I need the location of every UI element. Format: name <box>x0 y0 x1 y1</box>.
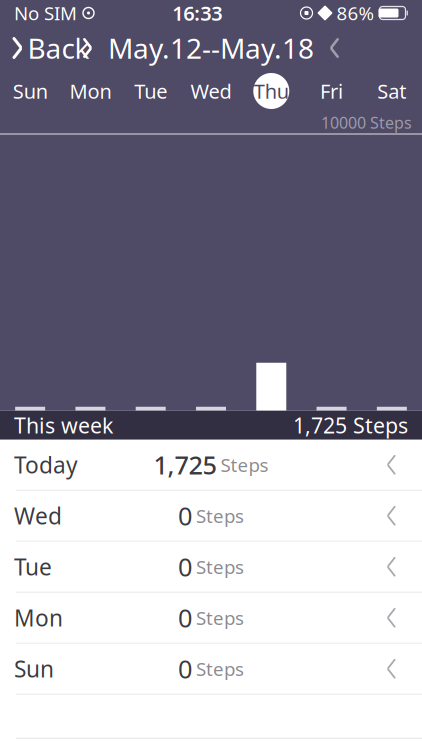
staticText: This week <box>14 411 113 439</box>
staticText: 16:33 <box>172 0 222 26</box>
button[interactable]: Fri <box>301 71 362 111</box>
button[interactable]: Sun <box>0 71 60 111</box>
staticText: 10000 Steps <box>321 112 412 133</box>
staticText: 0 <box>178 550 192 583</box>
staticText: Mon <box>69 78 111 104</box>
button[interactable]: Previous week <box>77 32 98 64</box>
staticText: 1,725 <box>153 448 216 481</box>
button[interactable]: Mon <box>60 71 121 111</box>
staticText: Sat <box>377 78 406 104</box>
staticText: Tue <box>134 78 167 104</box>
staticText: 0 <box>178 652 192 685</box>
button[interactable]: Tue <box>0 542 422 593</box>
staticText: Sun <box>13 78 48 104</box>
button[interactable]: Mon <box>0 593 422 644</box>
button[interactable]: Sat <box>362 71 422 111</box>
staticText: Fri <box>320 78 343 104</box>
staticText: Mon <box>14 603 63 633</box>
staticText: Steps <box>196 503 244 528</box>
staticText: 0 <box>178 601 192 634</box>
staticText: Thu <box>254 78 289 104</box>
button[interactable]: Today <box>0 440 422 491</box>
staticText: Steps <box>220 452 268 477</box>
staticText: Wed <box>190 78 231 104</box>
staticText: Wed <box>14 501 62 531</box>
staticText: Tue <box>14 552 52 582</box>
staticText: Sun <box>14 654 54 684</box>
staticText: May.12--May.18 <box>108 29 314 67</box>
staticText: 0 <box>178 499 192 532</box>
button[interactable]: Back <box>0 23 89 73</box>
staticText: Today <box>14 450 78 480</box>
staticText: Back <box>27 29 89 67</box>
button[interactable]: Next week <box>324 32 345 64</box>
button[interactable]: Tue <box>121 71 181 111</box>
staticText: Steps <box>196 656 244 681</box>
button[interactable]: Thu <box>241 71 301 111</box>
staticText: Steps <box>196 554 244 579</box>
staticText: 86% <box>336 1 374 25</box>
button[interactable]: Sun <box>0 644 422 695</box>
button[interactable]: Wed <box>181 71 241 111</box>
staticText: Steps <box>196 605 244 630</box>
staticText: 1,725 Steps <box>293 411 408 439</box>
staticText: No SIM <box>14 1 77 25</box>
button[interactable]: Wed <box>0 491 422 542</box>
